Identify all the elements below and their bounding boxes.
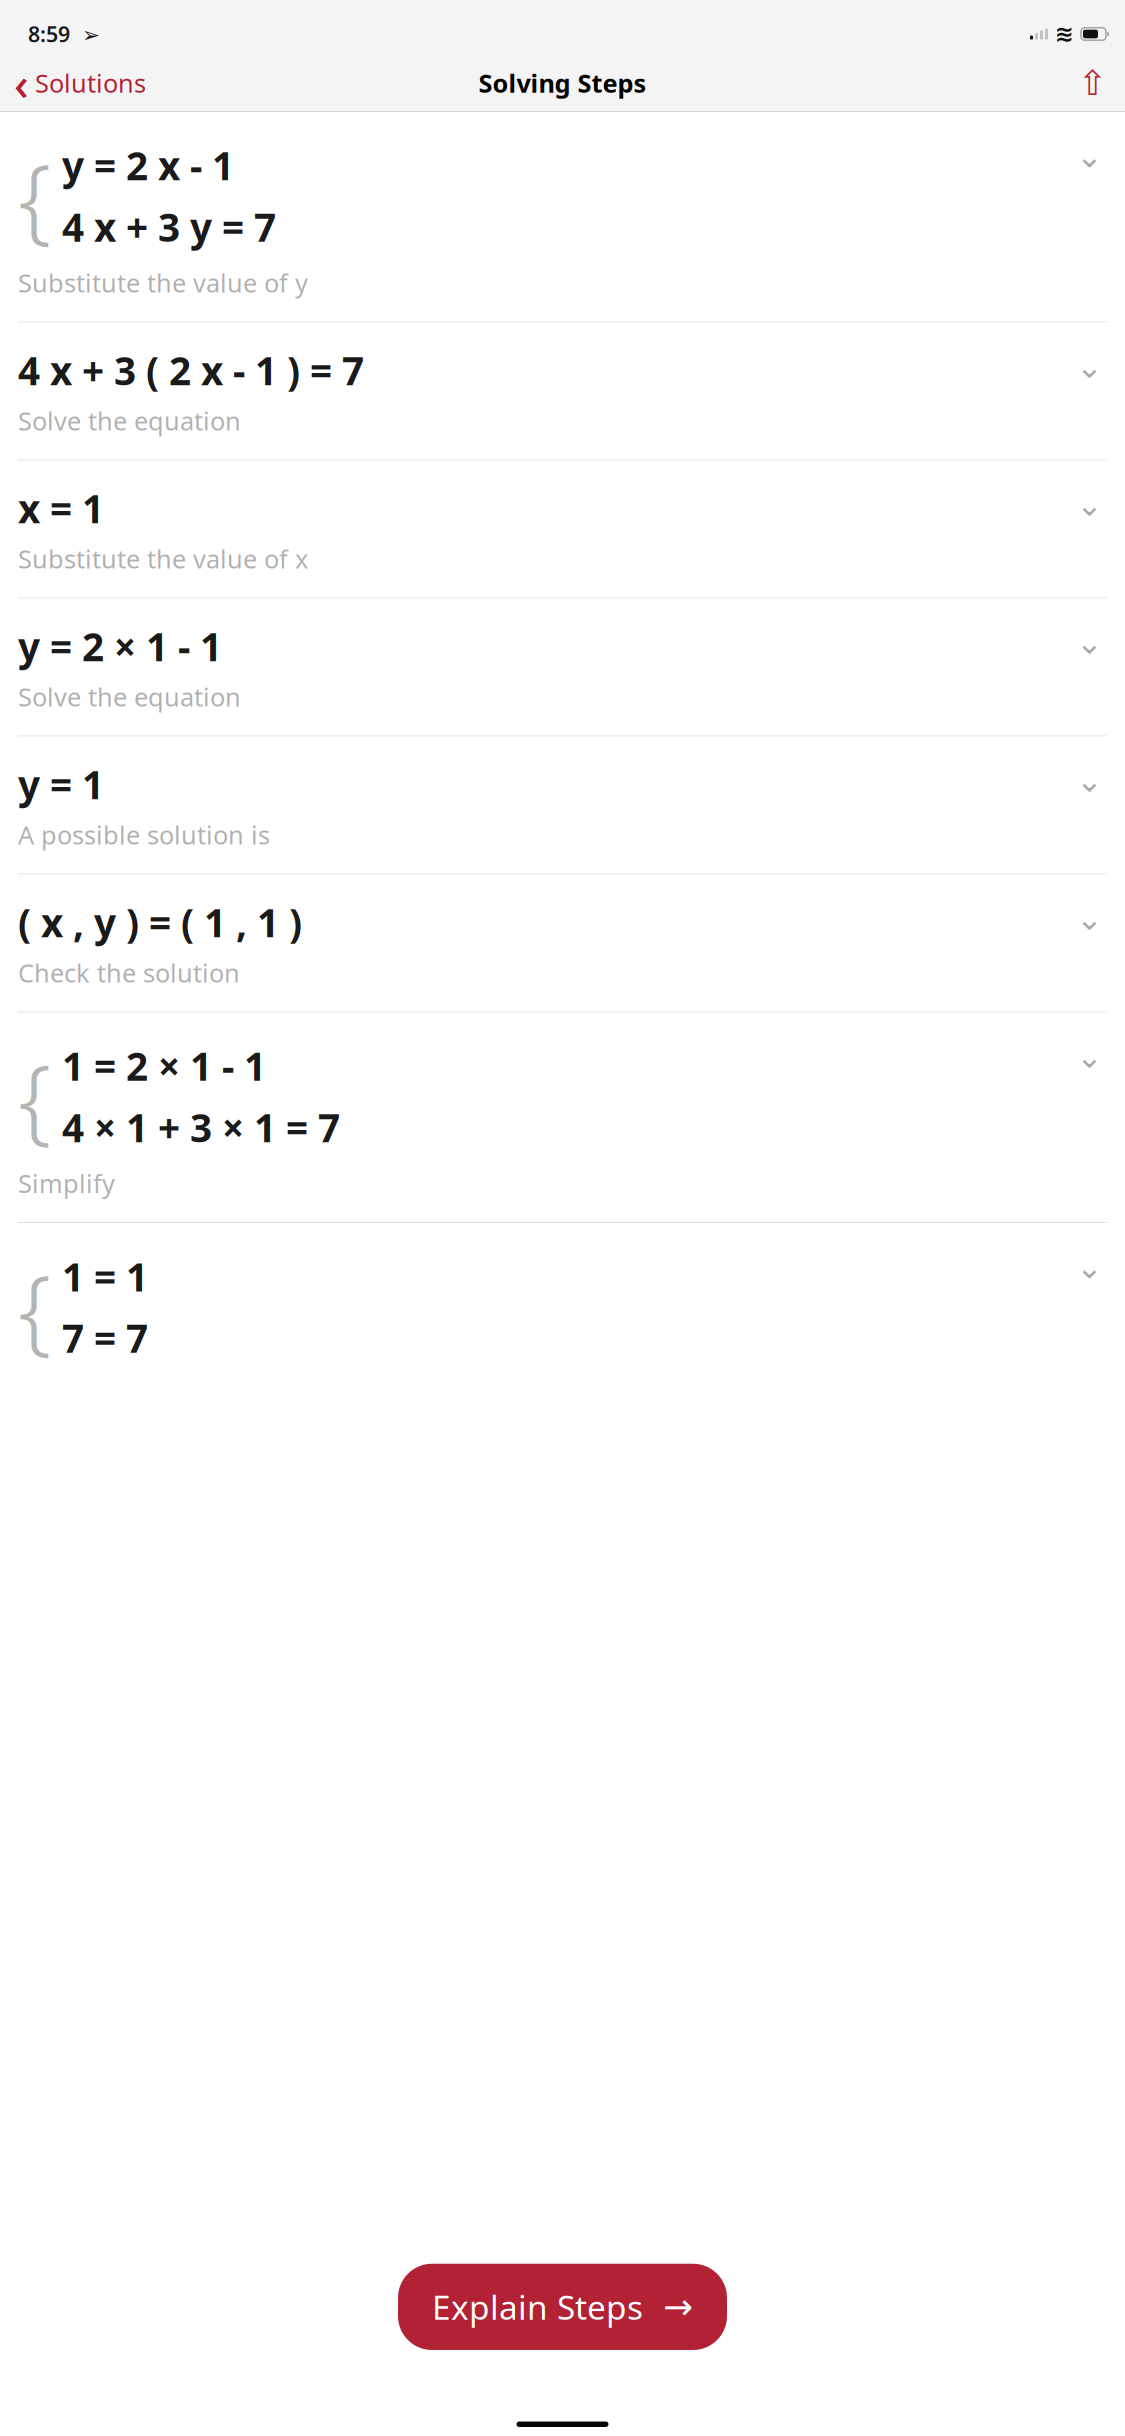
button[interactable]: 4 x + 3 ( 2 x - 1 ) = 7 bbox=[0, 323, 1125, 460]
button[interactable]: { bbox=[0, 1223, 1125, 1391]
button[interactable]: ‹ bbox=[0, 47, 156, 119]
staticText: Solving Steps bbox=[478, 66, 646, 100]
staticText: y = 2 × 1 - 1 bbox=[18, 621, 222, 672]
button[interactable]: Share bbox=[1060, 57, 1125, 109]
staticText: ‹ bbox=[14, 53, 29, 113]
staticText: { bbox=[18, 1034, 52, 1158]
staticText: Explain Steps bbox=[432, 2285, 643, 2329]
staticText: ⌄ bbox=[1076, 138, 1103, 174]
staticText: Check the solution bbox=[18, 956, 240, 989]
staticText: Substitute the value of y bbox=[18, 266, 308, 299]
staticText: ⇧ bbox=[1078, 63, 1107, 103]
button[interactable]: y = 2 × 1 - 1 bbox=[0, 599, 1125, 736]
staticText: { bbox=[18, 134, 52, 258]
staticText: Solve the equation bbox=[18, 680, 241, 713]
button[interactable]: x = 1 bbox=[0, 461, 1125, 598]
staticText: ⌄ bbox=[1076, 625, 1103, 661]
staticText: ⌄ bbox=[1076, 1249, 1103, 1285]
staticText: 4 × 1 + 3 × 1 = 7 bbox=[62, 1101, 340, 1153]
staticText: ⌄ bbox=[1076, 900, 1103, 937]
button[interactable]: y = 1 bbox=[0, 737, 1125, 874]
staticText: Solutions bbox=[35, 66, 146, 100]
button[interactable]: Explain Steps bbox=[398, 2264, 727, 2350]
staticText: 1 = 1 bbox=[62, 1251, 148, 1302]
staticText: x = 1 bbox=[18, 483, 104, 534]
staticText: 1 = 2 × 1 - 1 bbox=[62, 1040, 266, 1091]
staticText: Substitute the value of x bbox=[18, 542, 308, 575]
staticText: → bbox=[663, 2286, 693, 2327]
staticText: ( x , y ) = ( 1 , 1 ) bbox=[18, 896, 302, 948]
staticText: ⌄ bbox=[1076, 487, 1103, 523]
staticText: 4 x + 3 ( 2 x - 1 ) = 7 bbox=[18, 345, 364, 396]
staticText: ⌄ bbox=[1076, 1038, 1103, 1075]
staticText: 4 x + 3 y = 7 bbox=[62, 201, 276, 252]
button[interactable]: { bbox=[0, 112, 1125, 322]
staticText: A possible solution is bbox=[18, 818, 270, 851]
staticText: y = 2 x - 1 bbox=[62, 140, 234, 191]
staticText: ⌄ bbox=[1076, 763, 1103, 799]
staticText: Simplify bbox=[18, 1166, 115, 1200]
staticText: { bbox=[18, 1245, 52, 1369]
staticText: ≋ bbox=[1055, 21, 1074, 47]
button[interactable]: ( x , y ) = ( 1 , 1 ) bbox=[0, 874, 1125, 1011]
staticText: 7 = 7 bbox=[62, 1312, 148, 1363]
button[interactable]: { bbox=[0, 1012, 1125, 1222]
staticText: ⌄ bbox=[1076, 349, 1103, 385]
staticText: Solve the equation bbox=[18, 404, 241, 437]
staticText: 8:59 ➢ bbox=[28, 20, 100, 48]
staticText: y = 1 bbox=[18, 759, 104, 810]
